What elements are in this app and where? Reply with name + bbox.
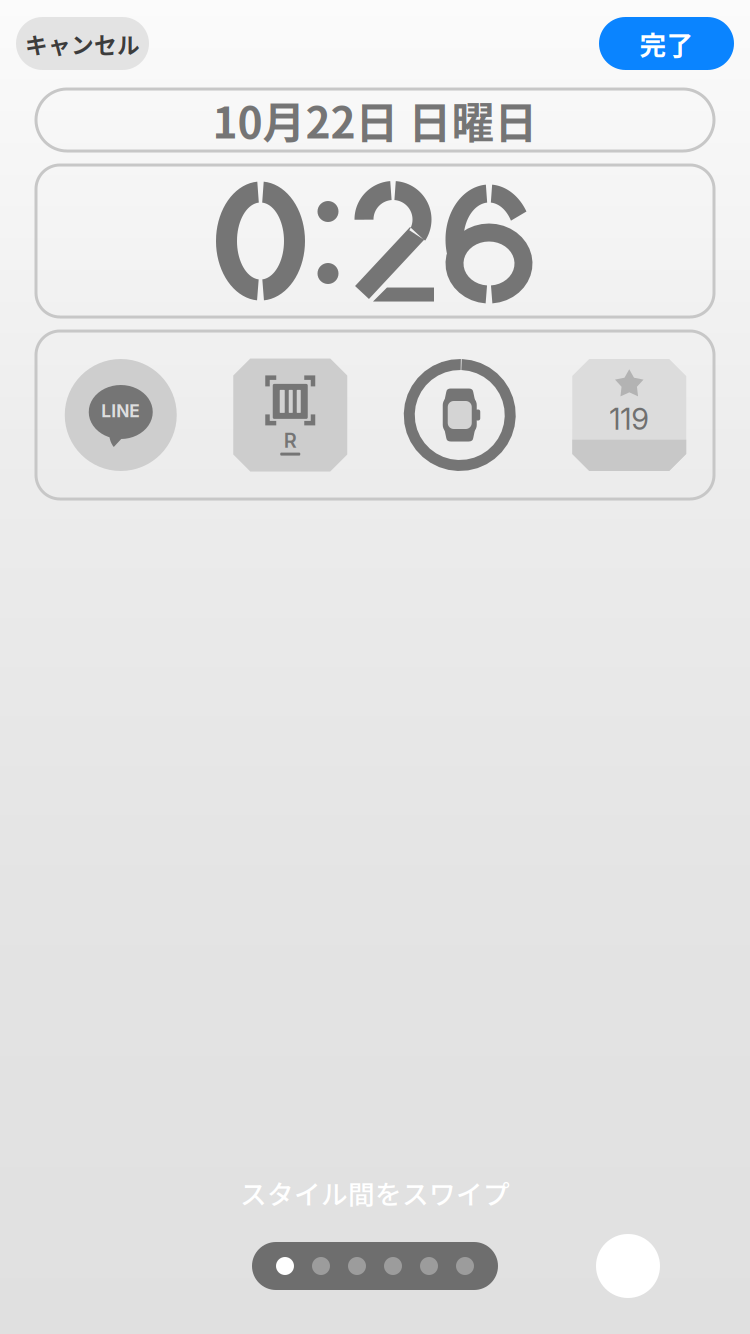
- staticText: 完了: [639, 24, 693, 63]
- button[interactable]: Watch app complication: [375, 359, 544, 471]
- button[interactable]: Rakuten point card complication: [205, 358, 375, 471]
- staticText: キャンセル: [25, 27, 140, 60]
- button[interactable]: 完了: [599, 17, 734, 70]
- staticText: R: [284, 428, 297, 453]
- button[interactable]: キャンセル: [16, 17, 149, 70]
- button[interactable]: Favourites, 119: [544, 359, 714, 471]
- staticText: 119: [609, 401, 649, 437]
- staticText: LINE: [101, 400, 140, 421]
- button[interactable]: LINE complication: [36, 359, 205, 471]
- staticText: スタイル間をスワイプ: [240, 1173, 510, 1212]
- button[interactable]: Shutter: [596, 1234, 660, 1298]
- staticText: 10月22日 日曜日: [212, 89, 537, 151]
